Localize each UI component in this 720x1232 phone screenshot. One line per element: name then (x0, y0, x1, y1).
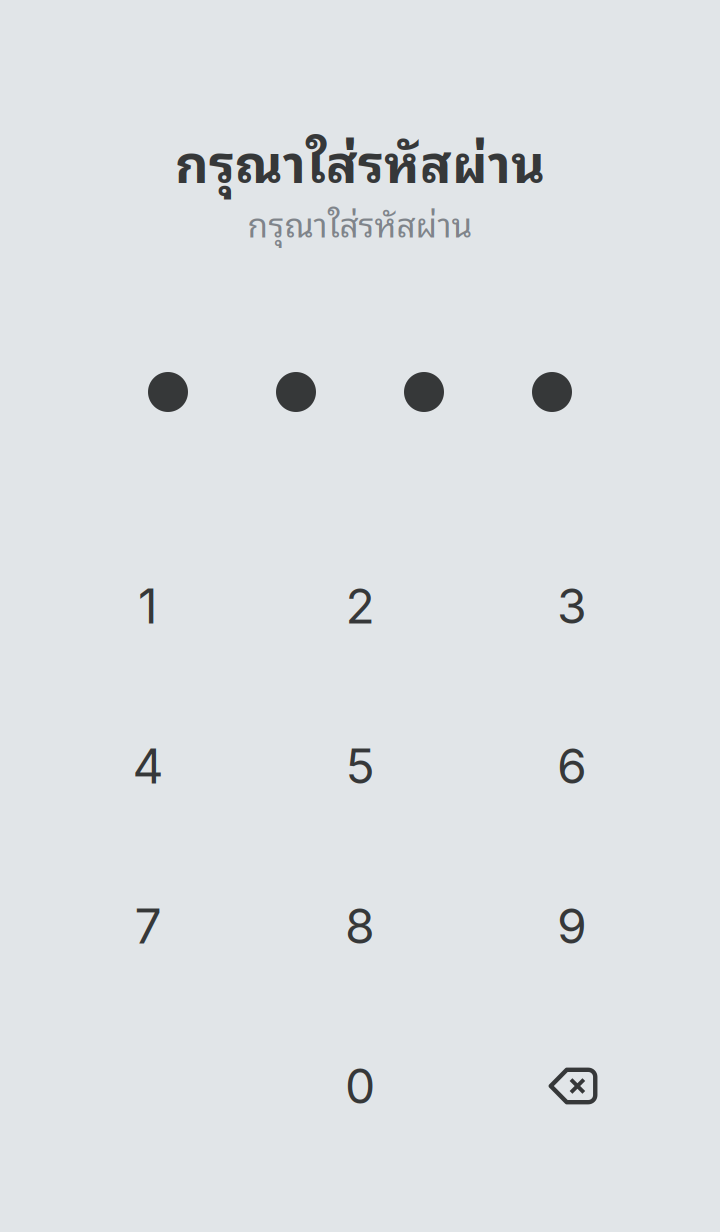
staticText: 4 (132, 737, 163, 795)
staticText: 3 (557, 577, 587, 635)
staticText: 2 (345, 577, 374, 635)
staticText: กรุณาใส่รหัสผ่าน (247, 196, 472, 249)
staticText: 9 (557, 897, 587, 955)
button[interactable]: 3 (497, 531, 647, 681)
button[interactable]: 8 (285, 851, 435, 1001)
staticText: 5 (345, 737, 374, 795)
button[interactable]: Delete (497, 1011, 647, 1161)
button[interactable]: 1 (73, 531, 223, 681)
staticText: 7 (134, 897, 161, 955)
button[interactable]: 0 (285, 1011, 435, 1161)
button[interactable]: 5 (285, 691, 435, 841)
button[interactable]: 9 (497, 851, 647, 1001)
button[interactable]: 2 (285, 531, 435, 681)
staticText: 1 (138, 577, 158, 635)
button[interactable]: 4 (73, 691, 223, 841)
staticText: 8 (345, 897, 375, 955)
button[interactable]: 7 (73, 851, 223, 1001)
staticText: กรุณาใส่รหัสผ่าน (175, 118, 545, 201)
staticText: 6 (557, 737, 587, 795)
staticText: 0 (345, 1057, 375, 1115)
button[interactable]: 6 (497, 691, 647, 841)
